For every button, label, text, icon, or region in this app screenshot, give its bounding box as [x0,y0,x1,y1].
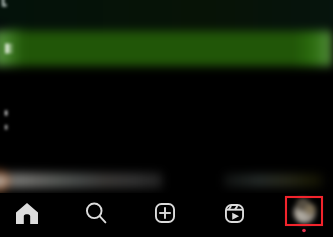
button[interactable]: Profile [283,194,327,236]
button[interactable]: Home [8,195,46,232]
button[interactable]: Reels [217,196,252,231]
button[interactable]: Create [147,195,183,231]
button[interactable]: Search [77,194,114,231]
